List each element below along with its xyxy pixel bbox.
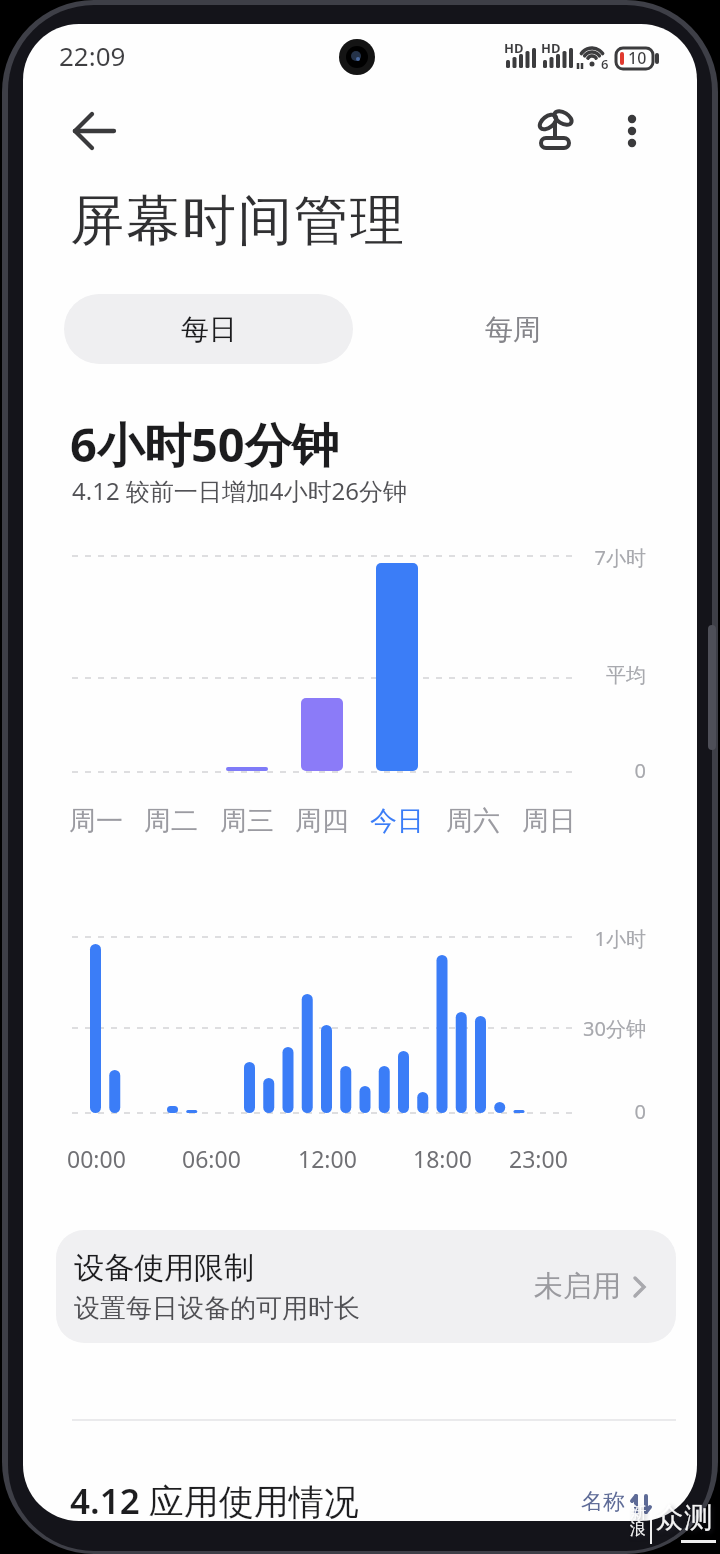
staticText: 0	[634, 757, 646, 784]
staticText: 周一	[69, 804, 123, 838]
staticText: 众测	[655, 1500, 713, 1535]
staticText: HD	[541, 39, 561, 57]
staticText: 4.12 较前一日增加4小时26分钟	[72, 474, 408, 507]
button[interactable]	[610, 107, 654, 157]
staticText: 30分钟	[583, 1015, 646, 1042]
staticText: 6	[601, 55, 609, 73]
staticText: 周四	[295, 804, 349, 838]
staticText: 设备使用限制	[74, 1249, 254, 1287]
staticText: 未启用	[534, 1268, 621, 1305]
staticText: 浪	[630, 1519, 646, 1539]
staticText: 周六	[446, 804, 500, 838]
staticText: 10	[628, 47, 647, 69]
staticText: 周二	[144, 804, 198, 838]
staticText: HD	[504, 39, 524, 57]
staticText: 平均	[606, 663, 646, 688]
button[interactable]: 设备使用限制	[56, 1230, 676, 1343]
staticText: 18:00	[413, 1143, 472, 1174]
staticText: 每周	[485, 312, 541, 347]
staticText: 6小时50分钟	[70, 412, 339, 476]
staticText: 23:00	[509, 1143, 568, 1174]
staticText: 屏幕时间管理	[69, 187, 405, 255]
staticText: 22:09	[59, 38, 126, 73]
button[interactable]	[536, 108, 578, 150]
staticText: 06:00	[182, 1143, 241, 1174]
staticText: 新	[630, 1503, 646, 1523]
staticText: 0	[634, 1098, 646, 1125]
button[interactable]	[63, 101, 123, 161]
staticText: 设置每日设备的可用时长	[74, 1292, 360, 1325]
staticText: 7小时	[594, 544, 646, 571]
staticText: 周三	[220, 804, 274, 838]
staticText: 00:00	[67, 1143, 126, 1174]
button[interactable]: 每日	[64, 294, 353, 364]
staticText: 每日	[181, 312, 237, 347]
button[interactable]: 名称	[581, 1488, 653, 1516]
staticText: 今日	[370, 804, 424, 838]
staticText: 1小时	[594, 925, 646, 952]
staticText: 名称	[581, 1488, 625, 1516]
staticText: 4.12 应用使用情况	[70, 1477, 359, 1525]
button[interactable]: 每周	[353, 294, 672, 364]
staticText: 周日	[522, 804, 576, 838]
staticText: 12:00	[298, 1143, 357, 1174]
